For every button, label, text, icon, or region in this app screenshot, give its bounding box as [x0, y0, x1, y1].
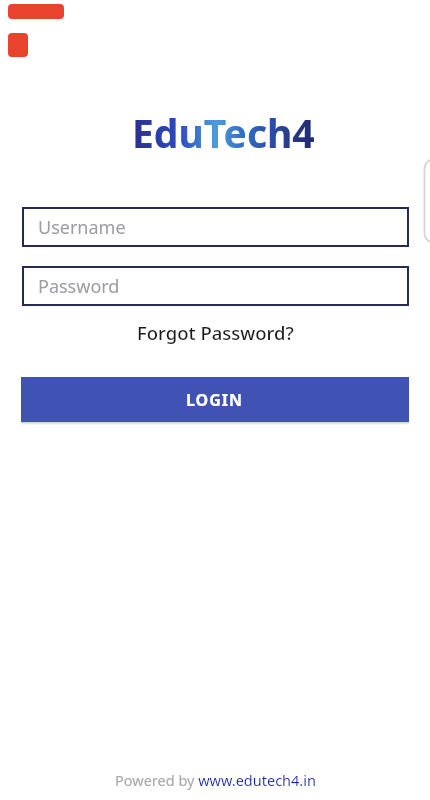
- staticText: Username: [38, 215, 126, 240]
- button[interactable]: Forgot Password?: [137, 320, 294, 345]
- staticText: Forgot Password?: [137, 320, 294, 345]
- staticText: Powered by www.edutech4.in: [115, 770, 316, 790]
- staticText: Password: [38, 274, 120, 299]
- button[interactable]: Password: [22, 266, 409, 306]
- button[interactable]: LOGIN: [21, 377, 409, 422]
- button[interactable]: Username: [22, 207, 409, 247]
- staticText: EduTech4: [132, 106, 315, 159]
- button[interactable]: Powered by www.edutech4.in: [115, 770, 316, 790]
- staticText: LOGIN: [186, 389, 244, 411]
